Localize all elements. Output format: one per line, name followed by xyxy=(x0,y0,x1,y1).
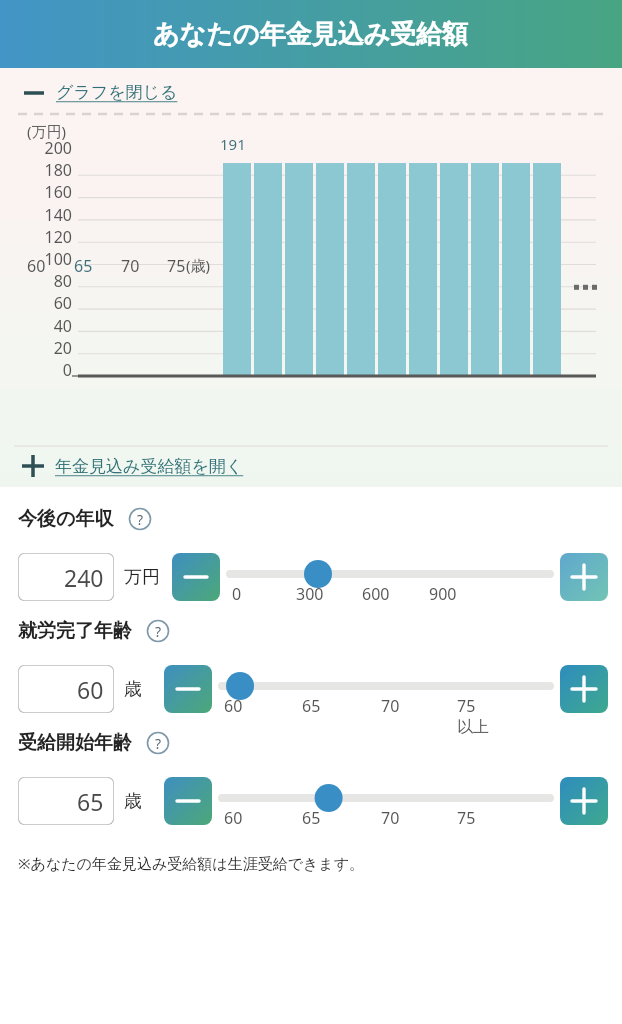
button[interactable]: ヘルプ xyxy=(146,731,170,755)
button[interactable]: 減らす xyxy=(172,553,220,601)
staticText: 60 xyxy=(77,674,104,705)
staticText: 140 xyxy=(14,204,72,226)
button[interactable]: 65 xyxy=(18,777,114,825)
staticText: ※あなたの年金見込み受給額は生涯受給できます。 xyxy=(18,853,365,873)
staticText: 今後の年収 xyxy=(18,507,114,531)
staticText: 40 xyxy=(14,315,72,337)
staticText: 歳 xyxy=(124,790,142,813)
button[interactable]: 就労完了年齢スライダー xyxy=(218,655,554,723)
button[interactable]: ヘルプ xyxy=(128,507,152,531)
staticText: 歳 xyxy=(124,678,142,701)
staticText: 75 xyxy=(457,807,476,829)
staticText: 就労完了年齢 xyxy=(18,619,132,643)
button[interactable]: グラフを閉じる xyxy=(0,80,622,105)
staticText: あなたの年金見込み受給額 xyxy=(153,18,469,51)
staticText: 65 xyxy=(302,807,321,829)
staticText: 60 xyxy=(14,292,72,314)
staticText: 75 xyxy=(167,255,186,277)
staticText: 75 xyxy=(457,695,476,717)
button[interactable]: 今後の年収スライダー xyxy=(226,543,554,611)
staticText: 0 xyxy=(14,359,72,381)
staticText: 70 xyxy=(381,807,400,829)
button[interactable]: 増やす xyxy=(560,777,608,825)
staticText: 80 xyxy=(14,270,72,292)
staticText: 受給開始年齢 xyxy=(18,731,132,755)
staticText: 65 xyxy=(302,695,321,717)
staticText: 600 xyxy=(362,583,390,605)
button[interactable]: ヘルプ xyxy=(146,619,170,643)
button[interactable]: 増やす xyxy=(560,665,608,713)
staticText: 20 xyxy=(14,337,72,359)
staticText: 60 xyxy=(224,807,243,829)
button[interactable]: 受給開始年齢スライダー xyxy=(218,767,554,835)
staticText: 70 xyxy=(121,255,140,277)
staticText: 900 xyxy=(429,583,457,605)
button[interactable]: 減らす xyxy=(164,777,212,825)
staticText: 180 xyxy=(14,159,72,181)
staticText: 100 xyxy=(14,248,72,270)
staticText: 65 xyxy=(77,786,104,817)
staticText: 200 xyxy=(14,137,72,159)
staticText: 0 xyxy=(232,583,242,605)
staticText: 万円 xyxy=(124,566,160,589)
button[interactable]: 240 xyxy=(18,553,114,601)
staticText: 65 xyxy=(74,255,93,277)
staticText: 300 xyxy=(296,583,324,605)
button[interactable]: 年金見込み受給額を開く xyxy=(0,447,622,487)
staticText: (万円) xyxy=(27,121,67,141)
staticText: 年金見込み受給額を開く xyxy=(55,456,244,477)
staticText: 240 xyxy=(64,562,104,593)
staticText: 191 xyxy=(220,134,246,154)
staticText: 60 xyxy=(27,255,46,277)
staticText: グラフを閉じる xyxy=(56,82,178,103)
button[interactable]: 減らす xyxy=(164,665,212,713)
staticText: ? xyxy=(155,734,162,753)
staticText: ? xyxy=(155,622,162,641)
staticText: 60 xyxy=(224,695,243,717)
staticText: 160 xyxy=(14,181,72,203)
button[interactable]: 60 xyxy=(18,665,114,713)
staticText: 以上 xyxy=(457,717,489,737)
button[interactable]: 増やす xyxy=(560,553,608,601)
staticText: 120 xyxy=(14,226,72,248)
staticText: 70 xyxy=(381,695,400,717)
staticText: ? xyxy=(137,510,144,529)
staticText: (歳) xyxy=(186,255,211,275)
